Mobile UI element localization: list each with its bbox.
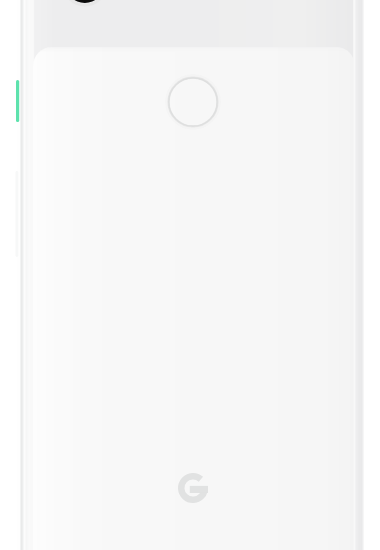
button[interactable]: Google Pixel phone back	[0, 0, 380, 550]
